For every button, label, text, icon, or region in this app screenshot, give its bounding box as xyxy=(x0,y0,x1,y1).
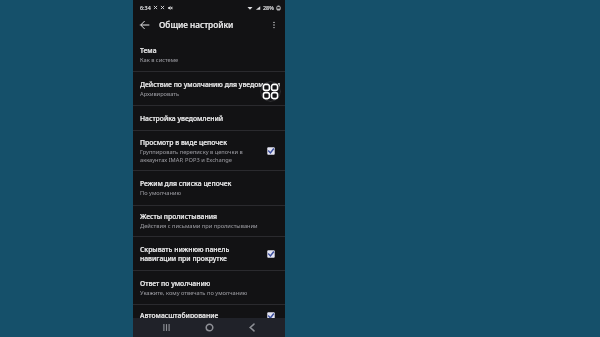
button[interactable]: Home xyxy=(201,319,218,336)
staticText: Действие по умолчанию для уведомлений xyxy=(140,80,280,89)
button[interactable]: Recents xyxy=(158,319,175,336)
button[interactable]: Режим для списка цепочек xyxy=(133,171,285,205)
staticText: Как в системе xyxy=(140,56,179,64)
staticText: Скрывать нижнюю панель навигации при про… xyxy=(140,245,235,263)
staticText: Ответ по умолчанию xyxy=(140,279,211,288)
staticText: Общие настройки xyxy=(159,19,234,30)
button[interactable]: Настройка уведомлений xyxy=(133,106,285,130)
button[interactable]: More options xyxy=(267,18,281,32)
staticText: Архивировать xyxy=(140,90,180,98)
button[interactable]: Back xyxy=(243,319,260,336)
staticText: Автомасштабирование xyxy=(140,311,219,318)
staticText: Действия с письмами при пролистывании xyxy=(140,222,258,230)
button[interactable]: Back xyxy=(138,18,152,32)
staticText: Настройка уведомлений xyxy=(140,114,224,123)
staticText: 6:34 xyxy=(140,4,151,11)
button[interactable]: Checkbox xyxy=(265,145,277,157)
staticText: Тема xyxy=(140,46,157,55)
button[interactable]: App grid xyxy=(260,81,281,102)
staticText: Жесты пролистывания xyxy=(140,212,217,221)
staticText: По умолчанию xyxy=(140,189,182,197)
staticText: Группировать переписку в цепочки в аккау… xyxy=(140,148,247,164)
button[interactable]: Checkbox xyxy=(265,310,277,318)
button[interactable]: Скрывать нижнюю панель навигации при про… xyxy=(133,237,285,270)
button[interactable]: Ответ по умолчанию xyxy=(133,271,285,304)
staticText: Укажите, кому отвечать по умолчанию xyxy=(140,289,248,297)
button[interactable]: Жесты пролистывания xyxy=(133,206,285,236)
staticText: 28% xyxy=(263,4,274,11)
button[interactable]: Просмотр в виде цепочек xyxy=(133,131,285,170)
staticText: Режим для списка цепочек xyxy=(140,179,232,188)
button[interactable]: Действие по умолчанию для уведомлений xyxy=(133,72,285,105)
staticText: Просмотр в виде цепочек xyxy=(140,138,227,147)
button[interactable]: Тема xyxy=(133,38,285,71)
button[interactable]: Автомасштабирование xyxy=(133,302,285,318)
button[interactable]: Checkbox xyxy=(265,248,277,260)
